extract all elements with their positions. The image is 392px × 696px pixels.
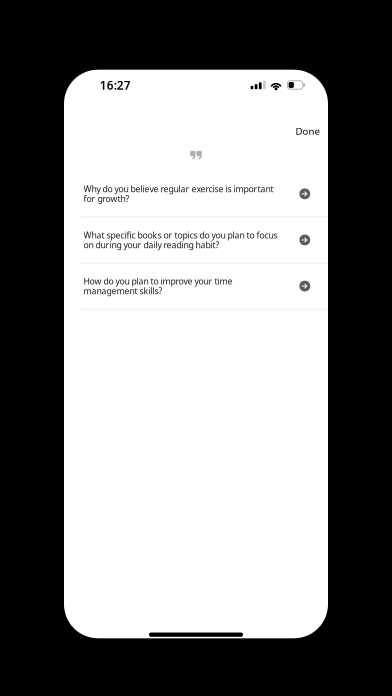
staticText: Done bbox=[296, 124, 320, 138]
staticText: Why do you believe regular exercise is i… bbox=[83, 183, 273, 205]
button[interactable]: How do you plan to improve your time man… bbox=[64, 263, 328, 309]
button[interactable]: Done bbox=[282, 118, 328, 144]
staticText: What specific books or topics do you pla… bbox=[83, 229, 277, 251]
staticText: How do you plan to improve your time man… bbox=[83, 275, 232, 297]
button[interactable]: What specific books or topics do you pla… bbox=[64, 217, 328, 263]
button[interactable]: Why do you believe regular exercise is i… bbox=[64, 171, 328, 216]
staticText: 16:27 bbox=[100, 77, 131, 93]
